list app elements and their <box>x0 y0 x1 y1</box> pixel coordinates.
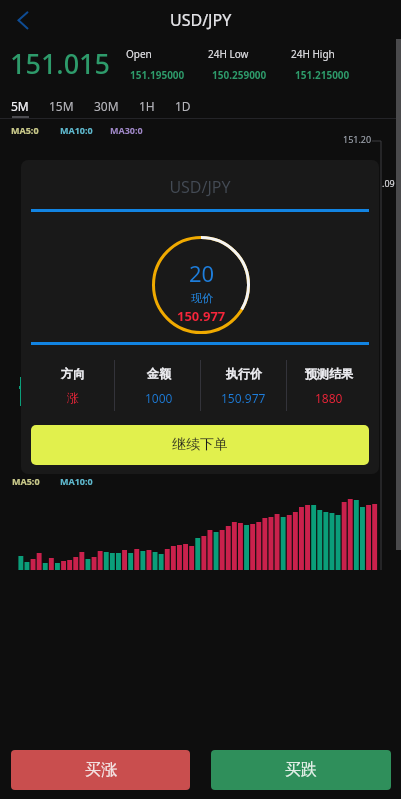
staticText: 预测结果 <box>305 366 353 381</box>
staticText: 24H Low <box>208 47 249 61</box>
staticText: 24H High <box>291 47 335 61</box>
staticText: 150.977 <box>177 307 226 325</box>
staticText: 执行价 <box>226 366 262 381</box>
button[interactable]: 30M <box>84 95 129 117</box>
staticText: 151.215000 <box>295 68 350 82</box>
staticText: 1000 <box>145 390 173 406</box>
button[interactable]: 1H <box>129 95 165 117</box>
button[interactable]: 5M <box>1 95 39 117</box>
staticText: .09 <box>382 177 395 189</box>
staticText: 继续下单 <box>172 436 228 454</box>
staticText: 30M <box>94 98 119 114</box>
staticText: MA30:0 <box>110 124 143 136</box>
button[interactable]: Back <box>1 0 45 40</box>
staticText: Open <box>126 47 152 61</box>
staticText: 1D <box>175 98 191 114</box>
button[interactable]: 15M <box>39 95 84 117</box>
staticText: 15M <box>49 98 74 114</box>
staticText: USD/JPY <box>21 176 379 198</box>
staticText: MA5:0 <box>12 475 40 487</box>
staticText: 20 <box>189 258 215 288</box>
staticText: USD/JPY <box>170 9 232 31</box>
staticText: 1H <box>139 98 155 114</box>
button[interactable]: 继续下单 <box>31 425 369 465</box>
staticText: 方向 <box>61 366 85 381</box>
staticText: 151.015 <box>10 45 111 82</box>
staticText: 金额 <box>147 366 171 381</box>
staticText: MA5:0 <box>11 124 39 136</box>
staticText: 买跌 <box>285 760 317 780</box>
staticText: 买涨 <box>85 760 117 780</box>
staticText: MA10:0 <box>60 475 93 487</box>
staticText: MA10:0 <box>60 124 93 136</box>
staticText: 现价 <box>191 291 213 305</box>
staticText: 150.977 <box>221 390 266 406</box>
staticText: 1880 <box>315 390 343 406</box>
button[interactable]: 买跌 <box>211 750 391 790</box>
staticText: 涨 <box>67 390 79 405</box>
button[interactable]: 买涨 <box>11 750 190 790</box>
staticText: 151.20 <box>343 133 372 145</box>
staticText: 5M <box>11 98 29 114</box>
staticText: 151.195000 <box>130 68 185 82</box>
staticText: 150.259000 <box>212 68 267 82</box>
button[interactable]: 1D <box>165 95 201 117</box>
